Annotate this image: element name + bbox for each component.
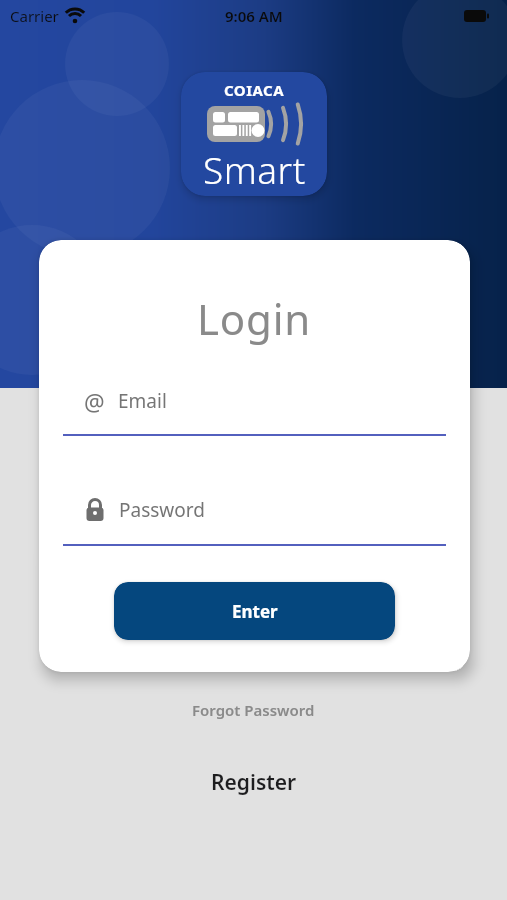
staticText: COIACA bbox=[224, 80, 285, 100]
staticText: Password bbox=[119, 497, 205, 523]
staticText: Enter bbox=[232, 600, 278, 623]
staticText: 9:06 AM bbox=[225, 6, 283, 26]
button[interactable]: Enter bbox=[114, 582, 395, 640]
staticText: @ bbox=[84, 386, 105, 417]
button[interactable]: Register bbox=[0, 762, 507, 802]
staticText: Smart bbox=[203, 144, 306, 194]
staticText: Login bbox=[197, 290, 312, 347]
button[interactable]: Forgot Password bbox=[0, 694, 507, 726]
staticText: Email bbox=[118, 388, 167, 414]
staticText: Forgot Password bbox=[192, 700, 315, 720]
staticText: Register bbox=[211, 768, 297, 797]
staticText: Carrier bbox=[10, 6, 59, 26]
